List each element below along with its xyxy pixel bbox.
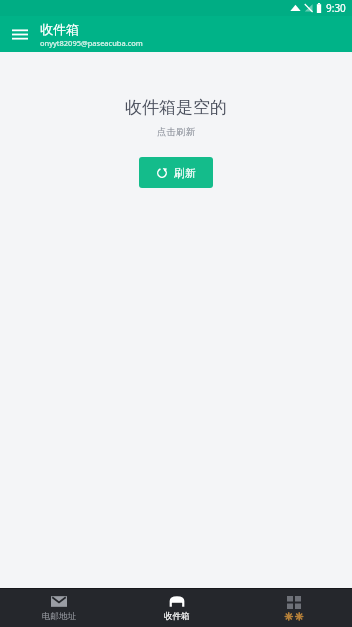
staticText: 刷新 (174, 166, 196, 180)
staticText: 收件箱是空的 (125, 97, 227, 118)
staticText: 点击刷新 (157, 126, 195, 138)
button[interactable]: 刷新 (139, 157, 213, 188)
button[interactable]: Open navigation drawer (4, 18, 36, 50)
button[interactable]: 电邮地址 (0, 589, 118, 627)
button[interactable]: More apps (235, 589, 352, 627)
staticText: 收件箱 (164, 611, 190, 622)
button[interactable]: 收件箱 (118, 589, 235, 627)
staticText: onyyt82095@paseacuba.com (40, 38, 143, 48)
staticText: 9:30 (326, 1, 346, 15)
staticText: 电邮地址 (42, 611, 76, 622)
staticText: 收件箱 (40, 21, 79, 37)
